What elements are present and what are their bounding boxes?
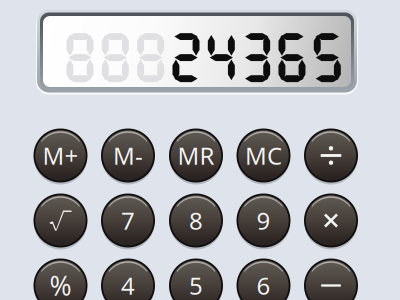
- button[interactable]: [304, 193, 358, 247]
- button[interactable]: [304, 128, 358, 182]
- button[interactable]: M+: [33, 128, 87, 182]
- staticText: 8: [189, 205, 203, 236]
- button[interactable]: MC: [236, 128, 290, 182]
- button[interactable]: MR: [169, 128, 223, 182]
- staticText: 9: [256, 205, 270, 236]
- button[interactable]: 7: [101, 193, 155, 247]
- button[interactable]: M-: [101, 128, 155, 182]
- button[interactable]: 6: [236, 258, 290, 300]
- button[interactable]: 9: [236, 193, 290, 247]
- staticText: 5: [189, 270, 203, 300]
- button[interactable]: %: [33, 258, 87, 300]
- staticText: 6: [256, 270, 270, 300]
- button[interactable]: 5: [169, 258, 223, 300]
- button[interactable]: [304, 258, 358, 300]
- button[interactable]: [33, 193, 87, 247]
- staticText: M-: [113, 140, 143, 171]
- button[interactable]: 8: [169, 193, 223, 247]
- button[interactable]: 4: [101, 258, 155, 300]
- staticText: M+: [42, 140, 78, 171]
- staticText: MR: [177, 140, 214, 171]
- staticText: 4: [121, 270, 135, 300]
- staticText: %: [49, 268, 71, 300]
- staticText: MC: [245, 140, 282, 171]
- staticText: 7: [121, 205, 135, 236]
